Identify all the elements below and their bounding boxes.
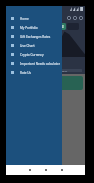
button[interactable]: Home <box>6 14 62 23</box>
staticText: My Portfolio <box>20 26 38 30</box>
button[interactable]: USD <box>58 23 66 30</box>
staticText: Live Chart <box>20 44 35 48</box>
button[interactable] <box>7 23 18 30</box>
button[interactable]: Rate Us <box>6 68 62 77</box>
button[interactable]: BUY <box>9 69 43 72</box>
button[interactable]: Search <box>66 15 72 21</box>
button[interactable]: Important Needs calculator <box>6 59 62 68</box>
staticText: USD <box>59 25 65 29</box>
button[interactable]: SELL <box>47 69 82 72</box>
button[interactable]: Home <box>22 165 38 175</box>
staticText: SELL <box>62 69 68 72</box>
staticText: Crypto Currency <box>20 53 44 57</box>
staticText: Rate Us <box>20 71 32 75</box>
button[interactable]: BTC <box>9 76 83 90</box>
staticText: Home <box>20 17 29 21</box>
button[interactable] <box>19 23 32 30</box>
button[interactable]: My Portfolio <box>6 23 62 32</box>
staticText: Important Needs calculator <box>20 62 60 66</box>
button[interactable]: Open navigation drawer <box>8 15 14 21</box>
button[interactable]: Account <box>54 165 70 175</box>
button[interactable]: Gift Exchanges Rates <box>6 32 62 41</box>
button[interactable]: MKT CAP($) <box>9 132 82 141</box>
button[interactable]: Live Chart <box>6 41 62 50</box>
button[interactable]: VOL 24H <box>9 113 82 122</box>
button[interactable]: Crypto Currency <box>6 50 62 59</box>
button[interactable]: 24H HIGH/LOW <box>9 93 82 102</box>
button[interactable]: Refresh <box>72 15 78 21</box>
staticText: BUY <box>24 69 29 72</box>
staticText: Gift Exchanges Rates <box>20 35 51 39</box>
button[interactable] <box>33 23 44 30</box>
button[interactable]: Market <box>38 165 54 175</box>
button[interactable]: Settings <box>78 15 84 21</box>
